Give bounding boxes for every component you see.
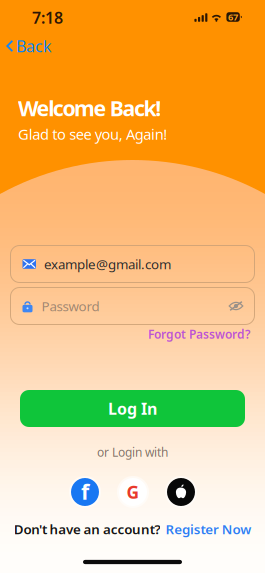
- button[interactable]: Continue with Google: [117, 476, 149, 508]
- staticText: example@gmail.com: [44, 255, 171, 273]
- staticText: Don't have an account?: [14, 520, 160, 538]
- button[interactable]: Back: [0, 30, 58, 62]
- staticText: Glad to see you, Again!: [18, 124, 167, 144]
- staticText: 7:18: [32, 7, 63, 28]
- staticText: Register Now: [165, 520, 251, 538]
- staticText: f: [81, 477, 89, 506]
- staticText: Password: [41, 297, 99, 315]
- staticText: 67: [228, 11, 238, 23]
- staticText: G: [126, 480, 139, 503]
- staticText: Welcome Back!: [18, 94, 161, 122]
- button[interactable]: Register Now: [165, 520, 251, 538]
- button[interactable]: Log In: [20, 390, 245, 427]
- button[interactable]: Continue with Apple: [165, 476, 197, 508]
- button[interactable]: Continue with Facebook: [69, 476, 101, 508]
- button[interactable]: Forgot Password?: [141, 324, 251, 344]
- staticText: or Login with: [97, 444, 168, 460]
- staticText: Back: [16, 35, 52, 57]
- staticText: Forgot Password?: [148, 326, 251, 342]
- staticText: Log In: [108, 398, 157, 419]
